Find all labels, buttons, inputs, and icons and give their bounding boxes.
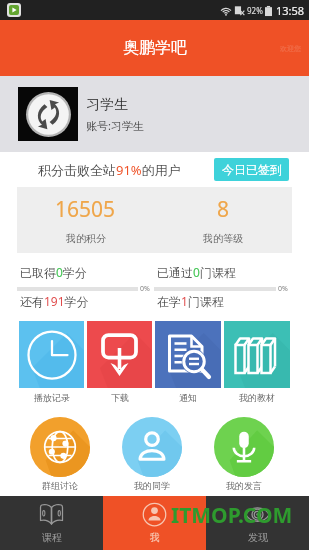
button[interactable]: 播放记录: [19, 321, 84, 410]
button[interactable]: 习学生: [0, 76, 309, 152]
staticText: 0%: [140, 284, 150, 293]
staticText: 今日已签到: [222, 162, 282, 177]
staticText: ITMOP.COM: [171, 501, 293, 530]
staticText: 播放记录: [34, 392, 70, 403]
staticText: 账号:习学生: [86, 118, 144, 133]
staticText: 我的发言: [226, 480, 262, 491]
staticText: 已取得0学分: [20, 264, 87, 280]
button[interactable]: 今日已签到: [214, 158, 289, 181]
staticText: 在学1门课程: [157, 293, 224, 309]
staticText: 发现: [248, 531, 268, 544]
button[interactable]: 下载: [87, 321, 152, 410]
staticText: 群组讨论: [42, 480, 78, 491]
button[interactable]: 还有191学分: [17, 293, 154, 319]
button[interactable]: 已通过0门课程: [154, 264, 292, 293]
staticText: 13:58: [276, 3, 305, 18]
staticText: 通知: [179, 392, 197, 403]
button[interactable]: 已取得0学分: [17, 264, 154, 293]
button[interactable]: 8: [154, 187, 292, 253]
button[interactable]: 我的教材: [224, 321, 290, 410]
staticText: 我的等级: [203, 232, 243, 245]
button[interactable]: 我: [103, 496, 206, 550]
button[interactable]: 我的发言: [198, 417, 290, 492]
button[interactable]: 群组讨论: [14, 417, 106, 492]
staticText: 下载: [111, 392, 129, 403]
button[interactable]: 我的同学: [106, 417, 198, 492]
staticText: 习学生: [86, 96, 128, 114]
staticText: 我的同学: [134, 480, 170, 491]
button[interactable]: 在学1门课程: [154, 293, 292, 319]
staticText: 92%: [247, 5, 263, 16]
button[interactable]: 通知: [155, 321, 221, 410]
staticText: 我的积分: [66, 232, 106, 245]
button[interactable]: 发现: [206, 496, 309, 550]
staticText: 我的教材: [239, 392, 275, 403]
staticText: 16505: [55, 195, 116, 224]
staticText: 8: [217, 195, 230, 224]
staticText: 已通过0门课程: [157, 264, 236, 280]
staticText: 0%: [278, 284, 288, 293]
staticText: 奥鹏学吧: [123, 38, 187, 58]
staticText: 欢迎您: [280, 44, 301, 53]
staticText: 我: [150, 531, 160, 544]
button[interactable]: 16505: [17, 187, 154, 253]
staticText: 课程: [42, 531, 62, 544]
button[interactable]: 课程: [0, 496, 103, 550]
staticText: 积分击败全站91%的用户: [38, 161, 181, 179]
staticText: 还有191学分: [20, 293, 89, 309]
